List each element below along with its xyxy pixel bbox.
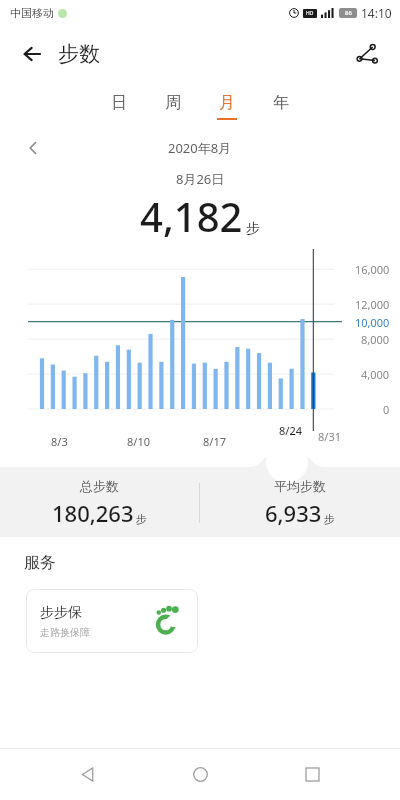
staticText: 12,000 [355,297,390,312]
staticText: 4,000 [361,367,390,382]
staticText: 中国移动 [10,6,54,20]
staticText: 8月26日 [176,170,225,188]
button[interactable]: 月 [200,82,254,130]
staticText: 8/3 [51,434,68,449]
button[interactable]: 总步数 [0,469,199,537]
button[interactable]: 日 [92,82,146,130]
staticText: 14:10 [361,5,392,21]
staticText: 6,933 [265,498,322,528]
staticText: HD [306,10,314,17]
staticText: 0 [383,402,390,417]
staticText: 步数 [58,41,100,67]
staticText: 总步数 [80,478,119,494]
button[interactable]: Home [176,750,224,798]
staticText: 周 [165,93,181,113]
staticText: 平均步数 [274,478,326,494]
staticText: 月 [219,93,235,113]
button[interactable]: Back [16,35,106,73]
button[interactable]: 周 [146,82,200,130]
staticText: 8/24 [279,423,303,438]
staticText: 86 [345,9,352,17]
staticText: 步步保 [40,604,82,622]
button[interactable]: Back [64,750,112,798]
staticText: 180,263 [52,498,134,528]
staticText: 步 [246,220,260,238]
staticText: 4,182 [140,189,243,243]
staticText: 16,000 [355,262,390,277]
button[interactable]: Previous month [22,137,44,159]
button[interactable]: 平均步数 [200,469,400,537]
staticText: 步 [324,512,335,526]
staticText: 步 [136,512,147,526]
button[interactable]: 步步保 [26,589,198,653]
button[interactable]: 年 [254,82,308,130]
staticText: 10,000 [355,315,390,330]
button[interactable]: Share [350,37,384,71]
staticText: 服务 [24,553,56,573]
staticText: 走路换保障 [40,626,90,639]
staticText: 年 [273,93,289,113]
staticText: 8/10 [127,434,150,449]
staticText: 8,000 [361,332,390,347]
button[interactable]: Recents [288,750,336,798]
staticText: 8/31 [318,429,341,444]
staticText: 日 [111,93,127,113]
staticText: 8/17 [203,434,226,449]
staticText: 2020年8月 [168,139,232,157]
other: Back [22,43,44,65]
